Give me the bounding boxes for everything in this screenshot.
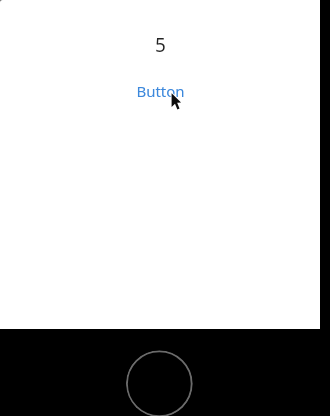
staticText: Button <box>136 81 185 101</box>
button[interactable]: Home <box>126 350 193 416</box>
staticText: 5 <box>155 32 166 58</box>
button[interactable]: Button <box>136 81 185 101</box>
